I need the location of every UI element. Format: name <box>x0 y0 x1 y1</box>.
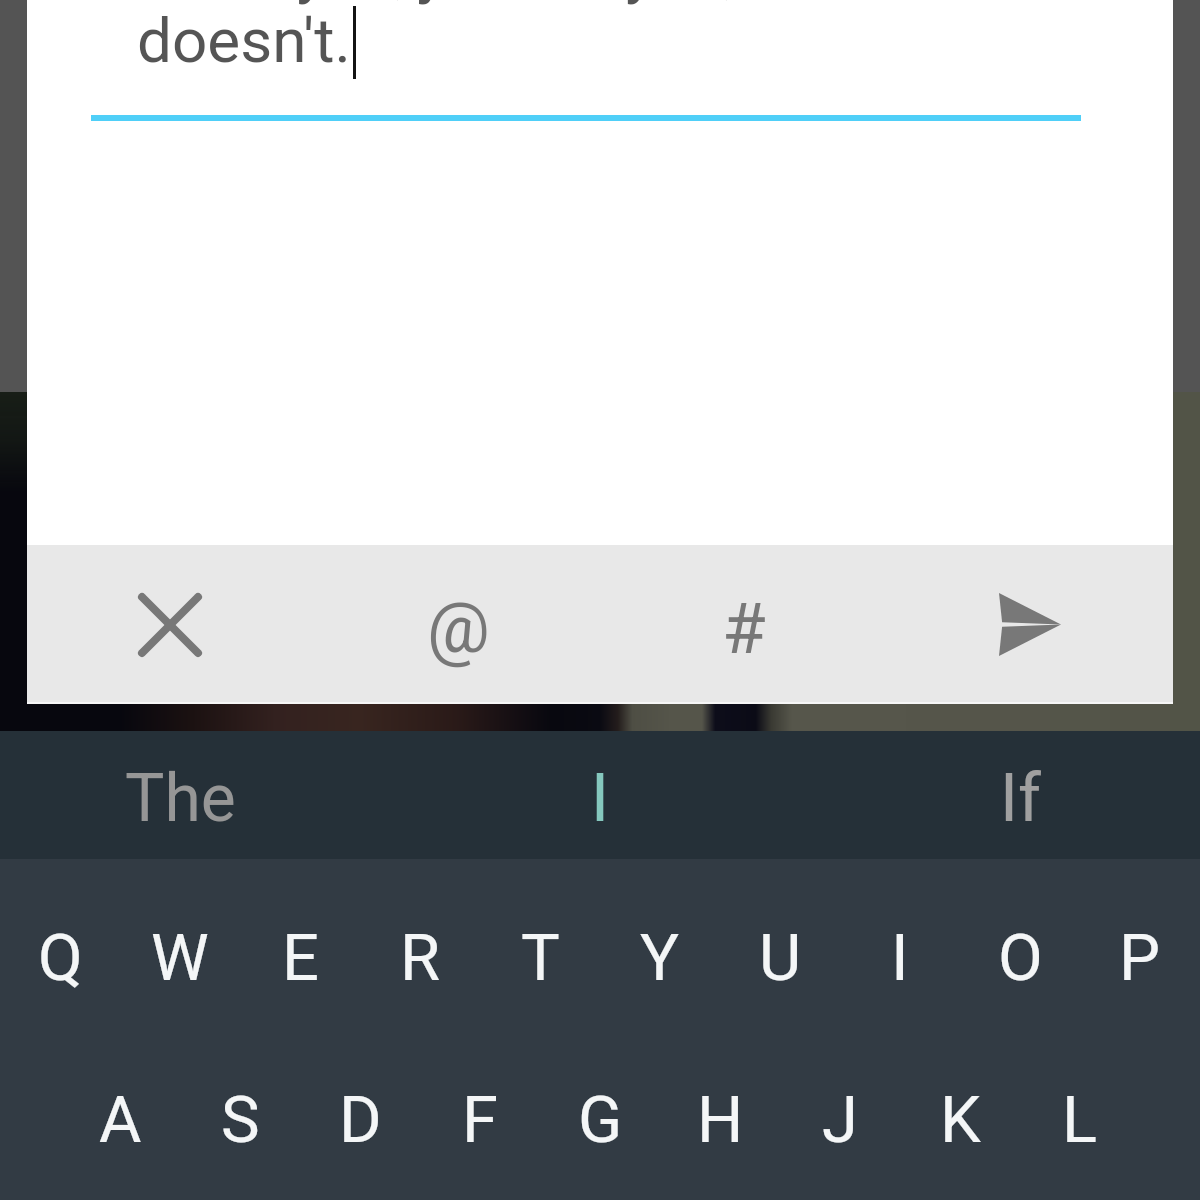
staticText: or maybe, just maybe, it <box>137 0 786 7</box>
button[interactable]: D <box>300 1065 420 1175</box>
staticText: O <box>998 920 1043 996</box>
staticText: G <box>578 1082 623 1158</box>
button[interactable]: Q <box>0 903 120 1013</box>
button[interactable]: I <box>360 731 840 859</box>
button[interactable]: I <box>840 903 960 1013</box>
staticText: W <box>151 920 209 996</box>
staticText: U <box>759 920 802 996</box>
button[interactable]: Y <box>600 903 720 1013</box>
button[interactable]: R <box>360 903 480 1013</box>
button[interactable]: H <box>660 1065 780 1175</box>
staticText: P <box>1119 920 1161 996</box>
staticText: L <box>1062 1082 1098 1158</box>
button[interactable]: Add hashtag <box>599 545 886 704</box>
button[interactable]: Mention someone <box>313 545 599 704</box>
staticText: S <box>221 1082 260 1158</box>
button[interactable]: J <box>780 1065 900 1175</box>
button[interactable]: A <box>60 1065 180 1175</box>
button[interactable]: S <box>180 1065 300 1175</box>
staticText: @ <box>427 587 490 669</box>
staticText: R <box>400 920 441 996</box>
staticText: I <box>891 920 909 996</box>
staticText: E <box>282 920 319 996</box>
staticText: Q <box>38 920 83 996</box>
button[interactable]: G <box>540 1065 660 1175</box>
button[interactable]: K <box>900 1065 1020 1175</box>
button[interactable]: O <box>960 903 1080 1013</box>
staticText: I <box>591 760 609 837</box>
staticText: # <box>722 587 766 670</box>
staticText: doesn't. <box>137 4 351 77</box>
staticText: F <box>462 1082 498 1158</box>
button[interactable]: T <box>480 903 600 1013</box>
button[interactable]: Close <box>27 545 313 704</box>
button[interactable]: If <box>840 731 1200 859</box>
button[interactable]: L <box>1020 1065 1140 1175</box>
staticText: A <box>99 1082 142 1158</box>
button[interactable]: U <box>720 903 840 1013</box>
staticText: If <box>1000 760 1041 837</box>
staticText: K <box>940 1082 981 1158</box>
staticText: D <box>339 1082 382 1158</box>
staticText: J <box>822 1082 858 1158</box>
staticText: Y <box>640 920 680 996</box>
button[interactable]: The <box>0 731 360 859</box>
button[interactable]: W <box>120 903 240 1013</box>
staticText: T <box>521 920 560 996</box>
button[interactable]: F <box>420 1065 540 1175</box>
button[interactable]: Send <box>886 545 1173 704</box>
staticText: H <box>697 1082 744 1158</box>
staticText: The <box>125 760 236 837</box>
button[interactable]: E <box>240 903 360 1013</box>
button[interactable]: P <box>1080 903 1200 1013</box>
